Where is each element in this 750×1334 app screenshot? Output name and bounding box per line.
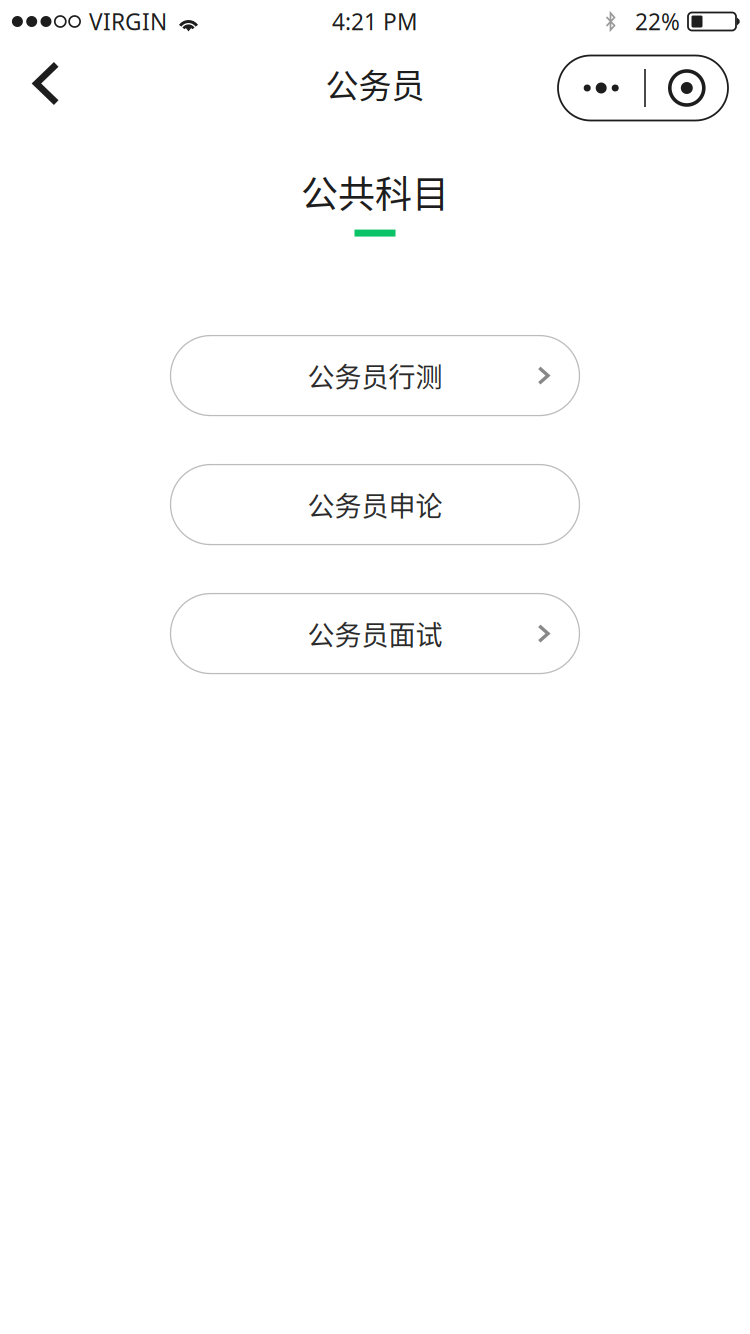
- button[interactable]: 公务员行测: [170, 336, 579, 416]
- button[interactable]: 公务员申论: [170, 465, 579, 545]
- button[interactable]: 公务员面试: [170, 594, 579, 674]
- staticText: 公务员申论: [307, 485, 442, 524]
- staticText: 公务员: [325, 60, 424, 107]
- staticText: 4:21 PM: [332, 6, 418, 36]
- staticText: 22%: [635, 6, 680, 36]
- staticText: 公务员行测: [307, 356, 442, 395]
- button[interactable]: More: [558, 55, 728, 120]
- staticText: 公共科目: [301, 165, 449, 219]
- button[interactable]: Back: [0, 43, 60, 123]
- staticText: 公务员面试: [307, 614, 442, 653]
- staticText: VIRGIN: [89, 6, 167, 36]
